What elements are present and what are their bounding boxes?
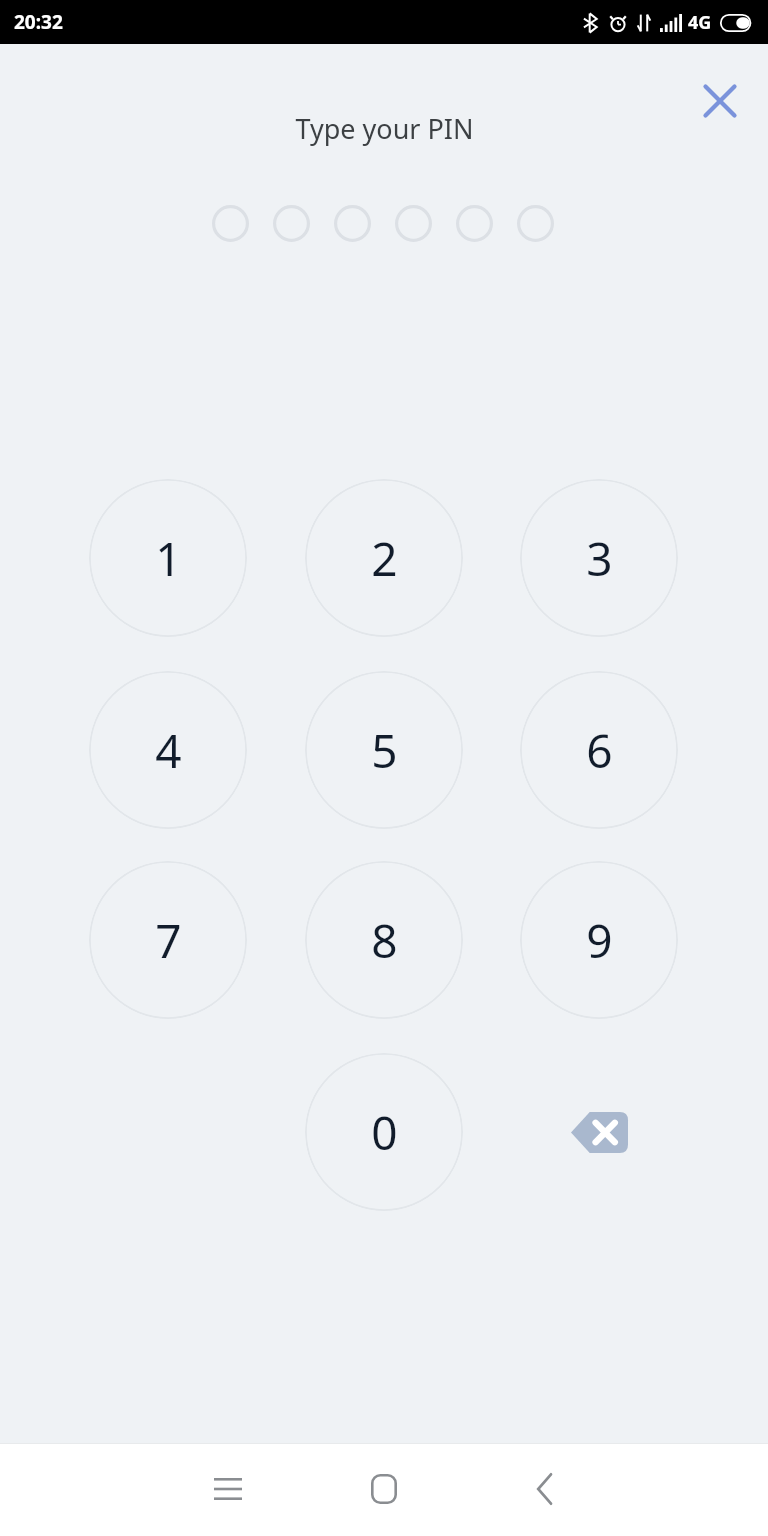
button[interactable]: 4 [89,671,247,829]
button[interactable]: Backspace [520,1053,678,1211]
staticText: 6 [586,719,613,782]
button[interactable]: Recent apps [194,1455,262,1523]
button[interactable]: 8 [305,861,463,1019]
button[interactable]: Back [511,1455,579,1523]
button[interactable]: Home [350,1455,418,1523]
button[interactable]: 5 [305,671,463,829]
button[interactable]: 3 [520,479,678,637]
button[interactable]: 0 [305,1053,463,1211]
staticText: 0 [371,1101,398,1164]
staticText: 7 [155,909,182,972]
staticText: 9 [586,909,613,972]
staticText: 3 [586,527,613,590]
button[interactable]: 7 [89,861,247,1019]
staticText: 4G [688,10,712,35]
staticText: 1 [155,527,182,590]
button[interactable]: Close [692,73,748,129]
staticText: 5 [371,719,398,782]
button[interactable]: 9 [520,861,678,1019]
staticText: 8 [371,909,398,972]
button[interactable]: 2 [305,479,463,637]
button[interactable]: 1 [89,479,247,637]
button[interactable]: 6 [520,671,678,829]
staticText: 20:32 [14,9,63,35]
staticText: 2 [371,527,398,590]
staticText: 4 [155,719,182,782]
staticText: Type your PIN [295,110,474,147]
